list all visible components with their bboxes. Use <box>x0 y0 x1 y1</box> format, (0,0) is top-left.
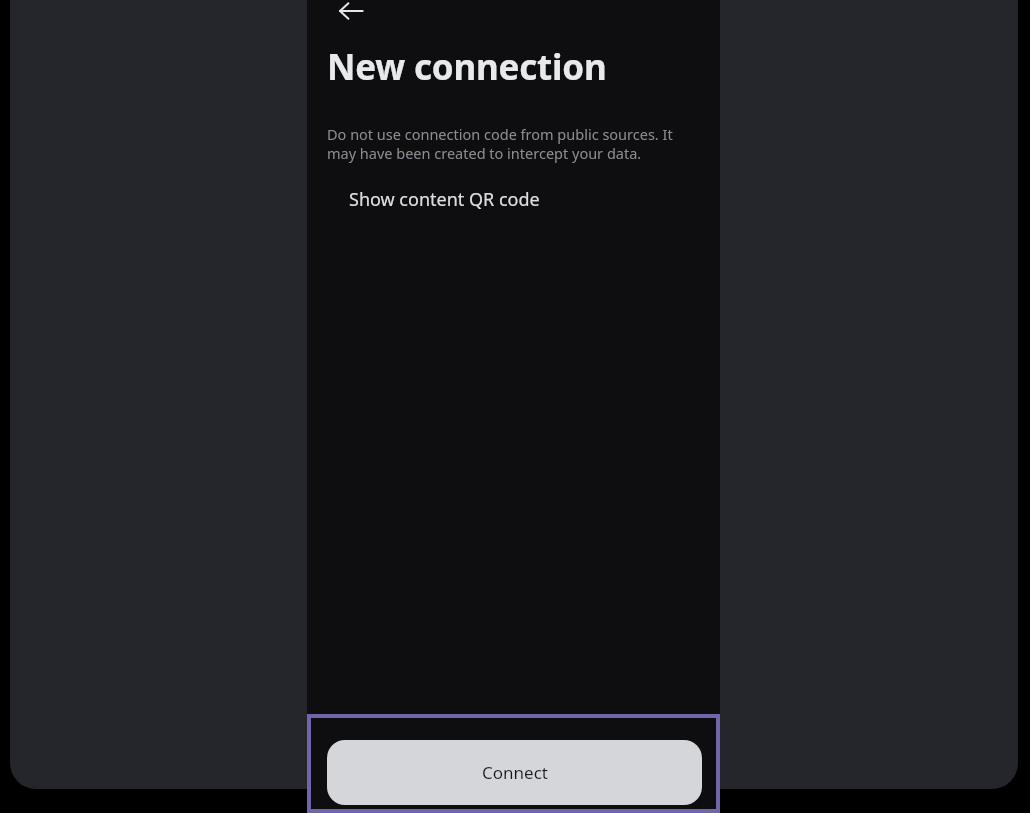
staticText: Connect <box>482 761 548 784</box>
staticText: Do not use connection code from public s… <box>327 124 692 164</box>
button[interactable]: Back <box>327 0 375 35</box>
button[interactable]: Connect <box>327 740 702 805</box>
staticText: Show content QR code <box>349 187 540 212</box>
button[interactable]: Show content QR code <box>335 180 705 218</box>
staticText: New connection <box>327 43 607 91</box>
